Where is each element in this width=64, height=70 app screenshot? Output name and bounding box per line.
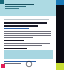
button[interactable] xyxy=(0,0,56,16)
button[interactable] xyxy=(4,22,53,27)
